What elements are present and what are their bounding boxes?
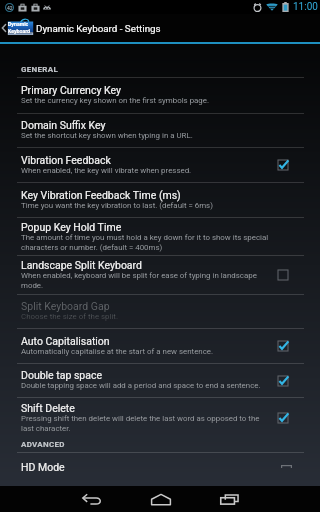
button[interactable]: Toggle HD Mode <box>281 465 292 468</box>
staticText: Split Keyboard Gap <box>21 300 110 312</box>
staticText: Double tap space <box>21 369 103 381</box>
staticText: Pressing shift then delete will delete t… <box>21 414 271 432</box>
staticText: Automatically capitalise at the start of… <box>21 347 214 356</box>
staticText: Primary Currency Key <box>21 84 121 96</box>
staticText: Set the shortcut key shown when typing i… <box>21 131 193 140</box>
button[interactable]: Landscape Split Keyboard <box>0 256 320 294</box>
button[interactable]: Toggle setting <box>274 409 292 427</box>
staticText: Domain Suffix Key <box>21 119 106 131</box>
button: Split Keyboard Gap <box>0 295 320 328</box>
button[interactable]: Toggle setting <box>274 156 292 174</box>
staticText: The amount of time you must hold a key d… <box>21 233 271 251</box>
staticText: Keyboard <box>8 28 31 34</box>
staticText: Dynamic <box>8 21 29 27</box>
button[interactable]: Key Vibration Feedback Time (ms) <box>0 183 320 217</box>
staticText: Shift Delete <box>21 402 75 414</box>
staticText: HD Mode <box>21 461 65 473</box>
staticText: Double tapping space will add a period a… <box>21 381 261 390</box>
staticText: Landscape Split Keyboard <box>21 259 142 271</box>
staticText: 11:00 <box>293 1 318 13</box>
button[interactable]: Back <box>57 486 126 512</box>
staticText: 42 <box>7 5 13 11</box>
button[interactable]: Toggle setting <box>274 266 292 284</box>
staticText: Dynamic Keyboard - Settings <box>36 23 161 34</box>
staticText: Popup Key Hold Time <box>21 221 122 233</box>
button[interactable]: Recent apps <box>195 486 264 512</box>
staticText: Set the currency key shown on the first … <box>21 96 210 105</box>
button[interactable]: Toggle setting <box>274 337 292 355</box>
button[interactable]: Navigate up <box>0 14 35 42</box>
button[interactable]: Double tap space <box>0 364 320 397</box>
staticText: GENERAL <box>21 65 59 74</box>
button[interactable]: Auto Capitalisation <box>0 329 320 363</box>
button[interactable]: Toggle setting <box>274 372 292 390</box>
staticText: Vibration Feedback <box>21 154 111 166</box>
staticText: ADVANCED <box>21 440 65 449</box>
staticText: Choose the size of the split. <box>21 312 119 321</box>
staticText: Time you want the key vibration to last.… <box>21 201 213 210</box>
staticText: Key Vibration Feedback Time (ms) <box>21 189 181 201</box>
button[interactable]: Home <box>126 486 195 512</box>
button[interactable]: Shift Delete <box>0 398 320 437</box>
button[interactable]: Primary Currency Key <box>0 78 320 113</box>
button[interactable]: Popup Key Hold Time <box>0 218 320 255</box>
staticText: Auto Capitalisation <box>21 335 110 347</box>
staticText: When enabled, the key will vibrate when … <box>21 166 192 175</box>
button[interactable]: HD Mode <box>0 453 320 486</box>
staticText: When enabled, keyboard will be split for… <box>21 271 271 289</box>
button[interactable]: Vibration Feedback <box>0 148 320 182</box>
button[interactable]: Domain Suffix Key <box>0 114 320 147</box>
